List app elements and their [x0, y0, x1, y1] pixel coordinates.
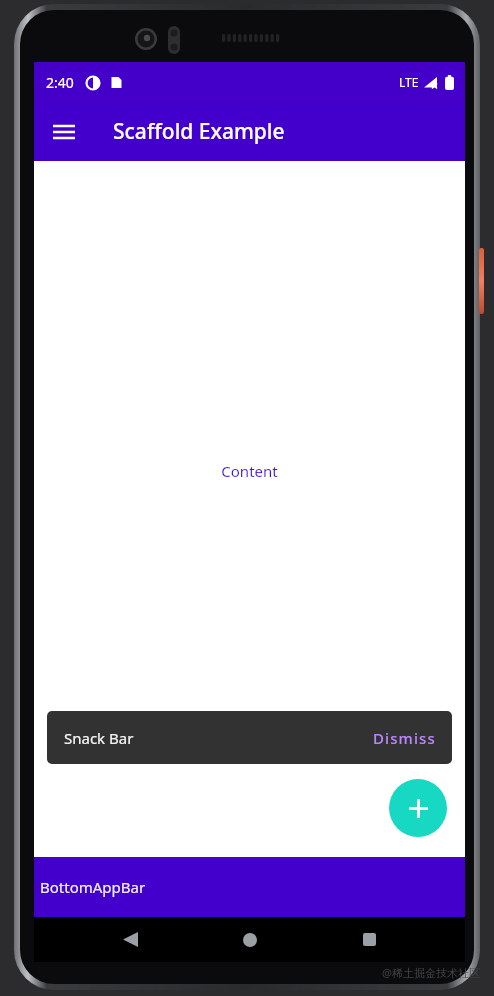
- button[interactable]: Snack Bar: [47, 711, 452, 764]
- staticText: 2:40: [46, 73, 74, 92]
- staticText: Snack Bar: [64, 728, 134, 748]
- button[interactable]: Back: [107, 917, 153, 962]
- button[interactable]: BottomAppBar: [34, 857, 465, 917]
- button[interactable]: Home: [227, 917, 273, 962]
- staticText: @稀土掘金技术社区: [382, 965, 480, 980]
- button[interactable]: Dismiss: [365, 722, 444, 754]
- button[interactable]: Open navigation menu: [40, 108, 88, 156]
- staticText: Content: [221, 461, 278, 481]
- button[interactable]: Recent apps: [346, 917, 392, 962]
- staticText: BottomAppBar: [40, 877, 146, 897]
- staticText: LTE: [399, 74, 419, 90]
- button[interactable]: Add: [389, 779, 447, 837]
- staticText: Dismiss: [373, 728, 436, 748]
- staticText: Scaffold Example: [113, 117, 285, 146]
